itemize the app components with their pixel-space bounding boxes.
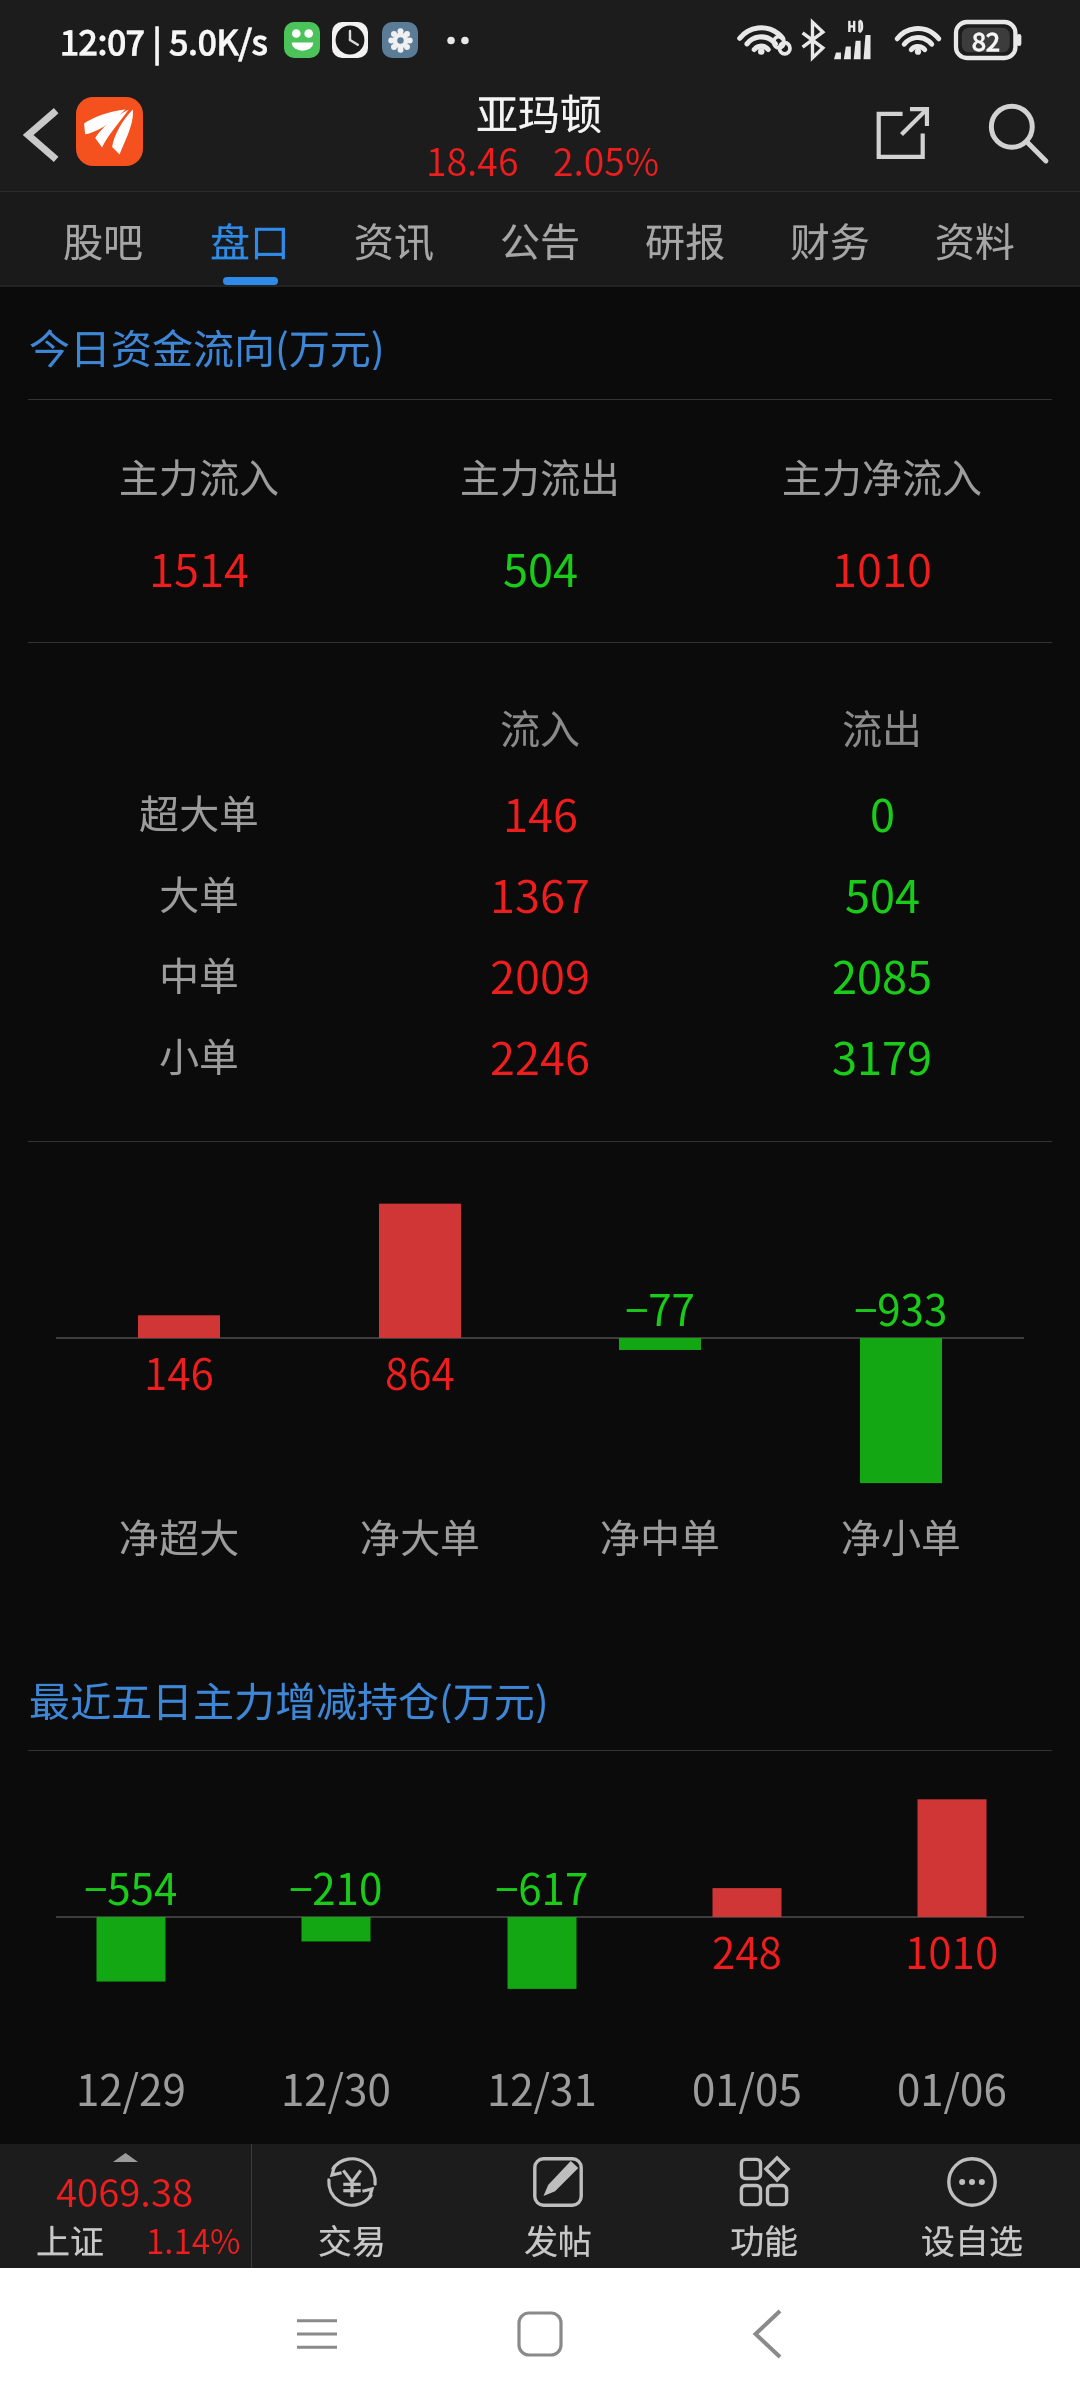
- staticText: 亚玛顿: [476, 81, 603, 133]
- button[interactable]: 研报: [613, 192, 757, 285]
- staticText: 流出: [842, 698, 922, 756]
- button[interactable]: 设自选: [869, 2144, 1075, 2268]
- staticText: 中单: [159, 945, 239, 1003]
- button[interactable]: Back: [0, 80, 86, 191]
- staticText: 1010: [832, 535, 932, 600]
- staticText: 2009: [490, 942, 590, 1007]
- staticText: 主力净流入: [782, 447, 982, 505]
- staticText: 248: [712, 1920, 782, 1981]
- staticText: 净超大: [119, 1507, 239, 1565]
- button[interactable]: 资讯: [322, 192, 466, 285]
- button[interactable]: App logo: [76, 97, 143, 166]
- staticText: 01/06: [897, 2057, 1007, 2118]
- staticText: 上证: [36, 2215, 104, 2264]
- staticText: 3179: [832, 1023, 932, 1088]
- staticText: 超大单: [139, 783, 259, 841]
- staticText: 0: [870, 780, 895, 845]
- button[interactable]: 4069.38: [0, 2144, 250, 2268]
- staticText: 主力流出: [460, 447, 620, 505]
- button[interactable]: Home: [495, 2268, 585, 2400]
- button[interactable]: Back: [722, 2268, 812, 2400]
- staticText: 1367: [490, 861, 590, 926]
- staticText: 2246: [490, 1023, 590, 1088]
- staticText: 01/05: [692, 2057, 802, 2118]
- button[interactable]: 财务: [758, 192, 902, 285]
- button[interactable]: Share: [853, 85, 949, 181]
- staticText: 12/31: [487, 2057, 597, 2118]
- staticText: 12/29: [76, 2057, 186, 2118]
- staticText: 设自选: [921, 2215, 1023, 2259]
- staticText: 净小单: [841, 1507, 961, 1565]
- button[interactable]: 资料: [903, 192, 1047, 285]
- staticText: −77: [625, 1277, 695, 1338]
- staticText: 4069.38: [56, 2163, 194, 2211]
- staticText: 今日资金流向(万元): [29, 316, 385, 370]
- staticText: −210: [289, 1856, 383, 1917]
- staticText: 18.46: [426, 133, 519, 187]
- staticText: 504: [503, 535, 578, 600]
- staticText: −554: [84, 1856, 178, 1917]
- staticText: 最近五日主力增减持仓(万元): [29, 1669, 549, 1723]
- staticText: 资料: [935, 211, 1015, 269]
- button[interactable]: 发帖: [455, 2144, 661, 2268]
- staticText: 交易: [318, 2215, 386, 2259]
- button[interactable]: Recents: [272, 2268, 362, 2400]
- staticText: 小单: [159, 1026, 239, 1084]
- staticText: 2.05%: [553, 133, 659, 187]
- staticText: 2085: [832, 942, 932, 1007]
- staticText: 流入: [500, 698, 580, 756]
- staticText: 146: [144, 1341, 214, 1402]
- staticText: 1.14%: [146, 2216, 241, 2264]
- staticText: 864: [385, 1341, 455, 1402]
- staticText: 1010: [905, 1920, 999, 1981]
- staticText: 12:07 | 5.0K/s: [60, 16, 268, 65]
- staticText: 功能: [730, 2215, 798, 2259]
- staticText: 净中单: [600, 1507, 720, 1565]
- staticText: 大单: [159, 864, 239, 922]
- button[interactable]: 股吧: [31, 192, 175, 285]
- staticText: 发帖: [524, 2215, 592, 2259]
- button[interactable]: 盘口: [178, 192, 322, 285]
- staticText: 146: [503, 780, 578, 845]
- staticText: 盘口: [210, 211, 290, 269]
- button[interactable]: Search: [970, 85, 1066, 181]
- button[interactable]: 交易: [249, 2144, 455, 2268]
- staticText: 主力流入: [119, 447, 279, 505]
- staticText: 1514: [149, 535, 249, 600]
- staticText: −617: [495, 1856, 589, 1917]
- staticText: 504: [845, 861, 920, 926]
- staticText: 股吧: [63, 211, 143, 269]
- staticText: 82: [972, 22, 1000, 58]
- staticText: 资讯: [354, 211, 434, 269]
- button[interactable]: 功能: [661, 2144, 867, 2268]
- staticText: 公告: [500, 211, 580, 269]
- staticText: 研报: [645, 211, 725, 269]
- staticText: 净大单: [360, 1507, 480, 1565]
- staticText: 12/30: [281, 2057, 391, 2118]
- button[interactable]: 公告: [468, 192, 612, 285]
- staticText: −933: [854, 1277, 948, 1338]
- staticText: 财务: [790, 211, 870, 269]
